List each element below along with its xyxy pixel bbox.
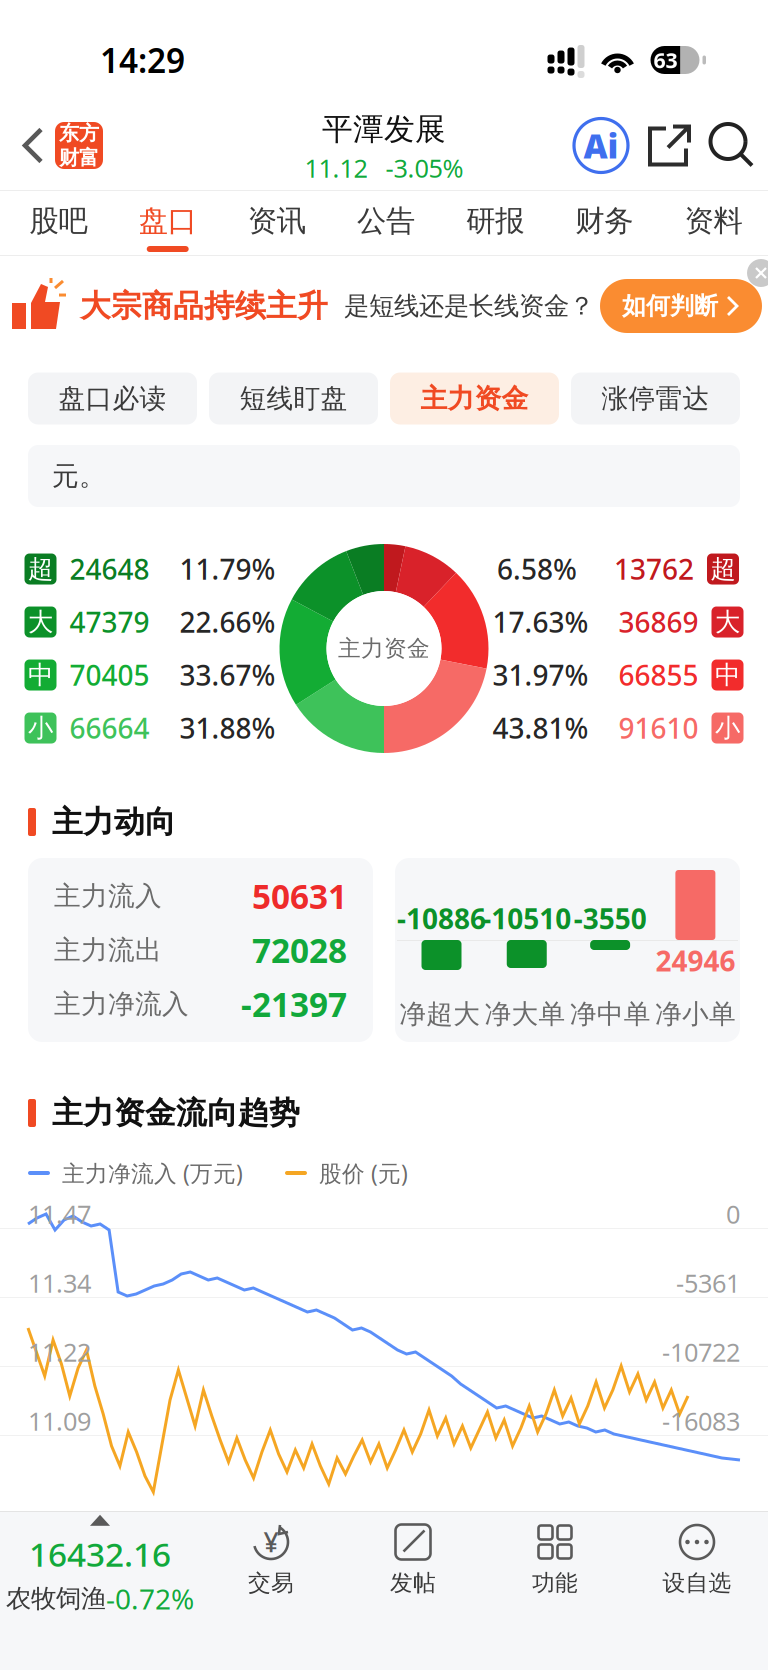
staticText: 11.79% bbox=[179, 550, 275, 588]
staticText: 公告 bbox=[357, 203, 415, 239]
staticText: 主力净流入 (万元) bbox=[62, 1158, 243, 1188]
staticText: 大 bbox=[715, 606, 740, 637]
staticText: 资料 bbox=[684, 203, 742, 239]
button[interactable]: 资讯 bbox=[222, 191, 331, 256]
staticText: 短线盯盘 bbox=[239, 382, 347, 415]
staticText: 43.81% bbox=[492, 709, 588, 747]
staticText: 中 bbox=[28, 659, 53, 690]
staticText: -21397 bbox=[241, 982, 347, 1026]
staticText: 东方 bbox=[59, 121, 99, 145]
staticText: 24648 bbox=[69, 550, 149, 588]
staticText: 资讯 bbox=[248, 203, 306, 239]
staticText: 设自选 bbox=[662, 1569, 731, 1597]
staticText: 14:29 bbox=[100, 38, 185, 82]
staticText: 超 bbox=[710, 553, 735, 584]
staticText: 91610 bbox=[618, 709, 698, 747]
staticText: 11.47 bbox=[28, 1197, 91, 1231]
staticText: 盘口必读 bbox=[58, 382, 166, 415]
staticText: 50631 bbox=[252, 874, 347, 918]
staticText: 主力动向 bbox=[52, 803, 176, 841]
staticText: -0.72% bbox=[106, 1580, 194, 1617]
staticText: 16432.16 bbox=[29, 1532, 171, 1576]
button[interactable]: 返回 bbox=[11, 100, 55, 190]
button[interactable]: 涨停雷达 bbox=[571, 372, 740, 424]
staticText: 净中单 bbox=[570, 998, 651, 1030]
button[interactable]: 盘口 bbox=[113, 191, 222, 256]
staticText: 平潭发展 bbox=[322, 110, 446, 148]
staticText: 涨停雷达 bbox=[601, 382, 709, 415]
staticText: 净小单 bbox=[655, 998, 736, 1030]
button[interactable]: 盘口必读 bbox=[28, 372, 197, 424]
staticText: 66855 bbox=[618, 656, 698, 694]
staticText: 股价 (元) bbox=[319, 1158, 408, 1188]
staticText: 中 bbox=[715, 659, 740, 690]
staticText: 63 bbox=[653, 46, 677, 74]
staticText: 主力资金流向趋势 bbox=[52, 1094, 300, 1132]
button[interactable]: 股吧 bbox=[4, 191, 113, 256]
button[interactable]: 功能 bbox=[484, 1511, 626, 1613]
staticText: Ai bbox=[583, 123, 618, 168]
staticText: 11.12 bbox=[304, 151, 367, 185]
staticText: 小 bbox=[715, 712, 740, 743]
button[interactable]: 公告 bbox=[331, 191, 440, 256]
staticText: 主力流出 bbox=[54, 934, 162, 966]
staticText: -16083 bbox=[662, 1404, 740, 1438]
staticText: -10886 bbox=[397, 900, 486, 937]
staticText: 主力流入 bbox=[54, 880, 162, 912]
button[interactable]: 资料 bbox=[659, 191, 768, 256]
staticText: 70405 bbox=[69, 656, 149, 694]
staticText: 盘口 bbox=[139, 203, 197, 239]
staticText: -10722 bbox=[662, 1335, 740, 1369]
staticText: 小 bbox=[28, 712, 53, 743]
staticText: 元。 bbox=[52, 460, 106, 492]
staticText: 0 bbox=[726, 1197, 740, 1231]
button[interactable]: 分享 bbox=[646, 120, 692, 170]
staticText: 净超大 bbox=[399, 998, 480, 1030]
staticText: 6.58% bbox=[497, 550, 577, 588]
staticText: 超 bbox=[28, 553, 53, 584]
staticText: 如何判断 bbox=[622, 291, 718, 321]
staticText: 24946 bbox=[655, 942, 735, 979]
staticText: 72028 bbox=[252, 928, 347, 972]
staticText: 主力净流入 bbox=[54, 988, 189, 1020]
button[interactable]: 研报 bbox=[441, 191, 550, 256]
staticText: 22.66% bbox=[179, 603, 275, 641]
staticText: 11.22 bbox=[28, 1335, 91, 1369]
staticText: 股吧 bbox=[30, 203, 88, 239]
staticText: 主力资金 bbox=[338, 635, 430, 662]
staticText: 大 bbox=[28, 606, 53, 637]
button[interactable]: 设自选 bbox=[626, 1511, 768, 1613]
staticText: -3550 bbox=[574, 900, 647, 937]
staticText: ¥ bbox=[263, 1524, 278, 1560]
staticText: -5361 bbox=[676, 1266, 740, 1300]
staticText: 交易 bbox=[248, 1569, 294, 1597]
staticText: 11.34 bbox=[28, 1266, 91, 1300]
staticText: 31.88% bbox=[179, 709, 275, 747]
staticText: 财富 bbox=[59, 145, 99, 170]
button[interactable]: ¥ bbox=[200, 1511, 342, 1613]
staticText: 33.67% bbox=[179, 656, 275, 694]
staticText: 净大单 bbox=[484, 998, 565, 1030]
staticText: 功能 bbox=[532, 1569, 578, 1597]
staticText: 大宗商品持续主升 bbox=[80, 287, 328, 325]
button[interactable]: 搜索 bbox=[708, 121, 756, 169]
staticText: 36869 bbox=[618, 603, 698, 641]
button[interactable]: AI 助手 bbox=[572, 116, 630, 174]
staticText: -10510 bbox=[482, 900, 571, 937]
staticText: 农牧饲渔 bbox=[6, 1583, 106, 1614]
staticText: 财务 bbox=[575, 203, 633, 239]
button[interactable]: 关闭 bbox=[744, 256, 768, 290]
staticText: 13762 bbox=[614, 550, 694, 588]
button[interactable]: 16432.16 bbox=[0, 1511, 200, 1613]
staticText: 47379 bbox=[69, 603, 149, 641]
staticText: 11.09 bbox=[28, 1404, 91, 1438]
button[interactable]: 大宗商品持续主升 bbox=[0, 256, 768, 356]
button[interactable]: 主力资金 bbox=[390, 372, 559, 424]
staticText: 17.63% bbox=[492, 603, 588, 641]
button[interactable]: 发帖 bbox=[342, 1511, 484, 1613]
staticText: 研报 bbox=[466, 203, 524, 239]
staticText: -3.05% bbox=[385, 151, 463, 185]
button[interactable]: 短线盯盘 bbox=[209, 372, 378, 424]
button[interactable]: 东方财富 bbox=[55, 122, 103, 169]
button[interactable]: 财务 bbox=[550, 191, 659, 256]
